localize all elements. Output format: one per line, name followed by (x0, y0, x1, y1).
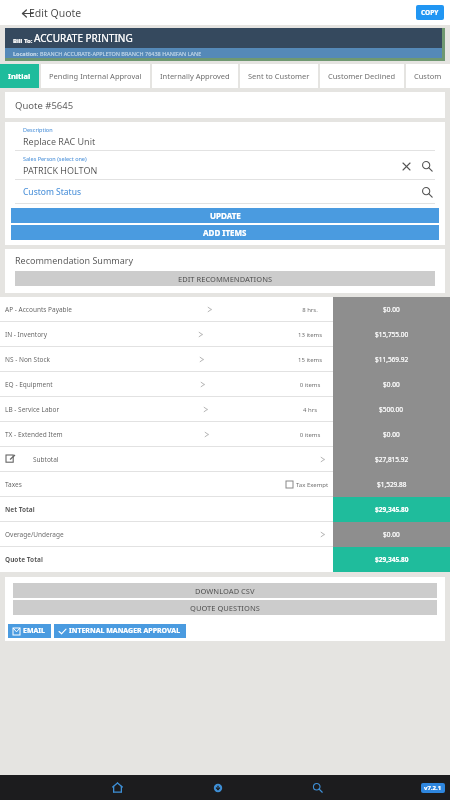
staticText: Tax Exempt (296, 481, 329, 489)
staticText: EQ - Equipment (5, 380, 53, 389)
staticText: $0.00 (383, 530, 400, 539)
button[interactable]: EMAIL (8, 624, 51, 638)
staticText: $0.00 (383, 380, 400, 389)
staticText: Customer Approved (414, 71, 442, 81)
staticText: INTERNAL MANAGER APPROVAL (69, 626, 181, 636)
staticText: 0 items (287, 381, 333, 389)
staticText: $500.00 (379, 405, 404, 414)
staticText: Sent to Customer (248, 71, 310, 81)
staticText: $0.00 (383, 430, 400, 439)
staticText: NS - Non Stock (5, 355, 50, 364)
staticText: Edit Quote (29, 6, 82, 20)
button[interactable]: Back (205, 775, 230, 800)
button[interactable]: Taxes (0, 472, 450, 497)
staticText: $0.00 (383, 305, 400, 314)
staticText: EDIT RECOMMENDATIONS (178, 274, 273, 284)
staticText: QUOTE QUESTIONS (190, 603, 260, 613)
staticText: Subtotal (33, 455, 59, 464)
button[interactable]: Home (105, 775, 130, 800)
staticText: UPDATE (210, 210, 241, 221)
staticText: TX - Extended Item (5, 430, 63, 439)
button[interactable]: Internally Approved (152, 64, 238, 88)
staticText: Sales Person (select one) (23, 155, 87, 162)
staticText: $27,815.92 (375, 455, 409, 464)
button[interactable]: LB - Service Labor (0, 397, 450, 422)
button[interactable]: Pending Internal Approval (41, 64, 150, 88)
staticText: Pending Internal Approval (49, 71, 142, 81)
staticText: ADD ITEMS (203, 227, 247, 238)
staticText: 13 items (287, 331, 333, 339)
staticText: Taxes (5, 480, 22, 489)
staticText: Recommendation Summary (15, 254, 134, 266)
staticText: $1,529.88 (377, 480, 407, 489)
staticText: LB - Service Labor (5, 405, 60, 414)
staticText: Customer Declined (328, 71, 396, 81)
button[interactable]: COPY (416, 5, 444, 20)
staticText: ACCURATE PRINTING (34, 31, 133, 45)
staticText: 0 items (287, 431, 333, 439)
button[interactable]: Clear (399, 159, 413, 173)
staticText: Quote #5645 (15, 99, 74, 112)
button[interactable]: Search (305, 775, 330, 800)
button[interactable]: QUOTE QUESTIONS (13, 600, 437, 615)
button[interactable]: UPDATE (11, 208, 439, 223)
staticText: v7.2.1 (424, 784, 442, 792)
staticText: Location: (13, 50, 40, 57)
staticText: AP - Accounts Payable (5, 305, 72, 314)
staticText: Description (23, 126, 53, 133)
staticText: Quote Total (5, 555, 43, 564)
button[interactable]: Back (18, 4, 36, 22)
staticText: Custom Status (23, 186, 81, 198)
button[interactable]: Sales Person (select one) (5, 151, 445, 180)
button[interactable]: Search (419, 184, 435, 200)
staticText: 8 hrs. (287, 306, 333, 314)
button[interactable]: NS - Non Stock (0, 347, 450, 372)
button[interactable]: INTERNAL MANAGER APPROVAL (54, 624, 186, 638)
staticText: $11,569.92 (375, 355, 409, 364)
button[interactable]: EDIT RECOMMENDATIONS (15, 271, 435, 286)
button[interactable]: Customer Declined (320, 64, 404, 88)
staticText: Overage/Underage (5, 530, 64, 539)
staticText: 15 items (287, 356, 333, 364)
button[interactable]: Customer Approved (406, 64, 450, 88)
staticText: IN - Inventory (5, 330, 48, 339)
staticText: $29,345.80 (375, 505, 409, 514)
button[interactable]: Quote Total (0, 547, 450, 572)
staticText: PATRICK HOLTON (23, 164, 98, 176)
staticText: BRANCH ACCURATE-APPLETON BRANCH 76438 HA… (40, 50, 202, 57)
button[interactable]: EQ - Equipment (0, 372, 450, 397)
button[interactable]: IN - Inventory (0, 322, 450, 347)
staticText: $15,755.00 (375, 330, 409, 339)
button[interactable]: Net Total (0, 497, 450, 522)
button[interactable]: TX - Extended Item (0, 422, 450, 447)
staticText: Initial (8, 71, 31, 81)
staticText: DOWNLOAD CSV (195, 586, 255, 596)
button[interactable]: ADD ITEMS (11, 225, 439, 240)
staticText: Bill To: (13, 37, 34, 45)
button[interactable]: Custom Status (5, 180, 445, 204)
button[interactable]: DOWNLOAD CSV (13, 583, 437, 598)
staticText: COPY (421, 8, 439, 17)
button[interactable]: Search (419, 158, 435, 174)
staticText: $29,345.80 (375, 555, 409, 564)
staticText: EMAIL (23, 626, 46, 636)
staticText: 4 hrs (287, 406, 333, 414)
button[interactable]: Description (5, 122, 445, 151)
staticText: Net Total (5, 505, 35, 514)
button[interactable]: Subtotal (0, 447, 450, 472)
button[interactable]: Sent to Customer (240, 64, 318, 88)
staticText: Replace RAC Unit (23, 135, 96, 147)
button[interactable]: AP - Accounts Payable (0, 297, 450, 322)
button[interactable]: Overage/Underage (0, 522, 450, 547)
button[interactable]: Initial (0, 64, 39, 88)
staticText: Internally Approved (160, 71, 230, 81)
